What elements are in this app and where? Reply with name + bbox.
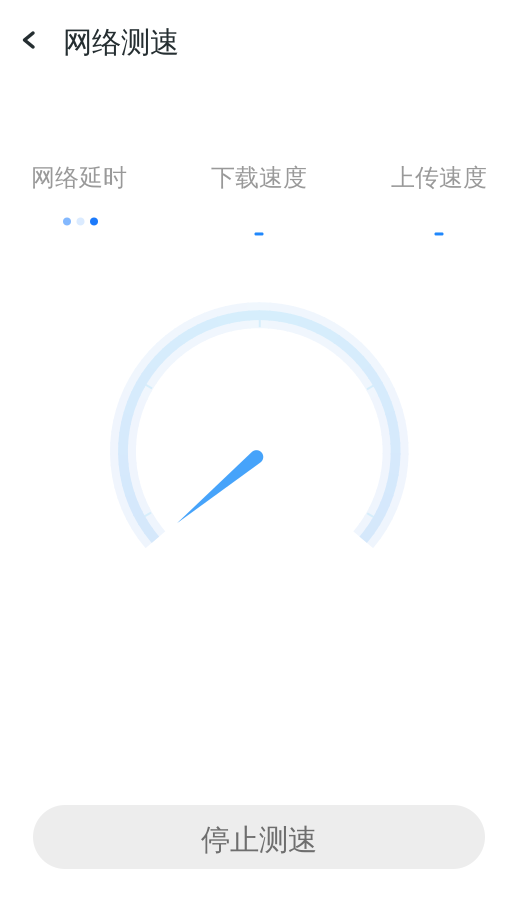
button[interactable]: 停止测速 xyxy=(33,805,485,869)
staticText: 停止测速 xyxy=(201,822,317,858)
staticText: 上传速度 xyxy=(391,163,487,192)
staticText: 网络延时 xyxy=(31,163,127,192)
button[interactable]: Back xyxy=(10,20,56,60)
staticText: 网络测速 xyxy=(63,24,179,60)
staticText: 下载速度 xyxy=(211,163,307,192)
